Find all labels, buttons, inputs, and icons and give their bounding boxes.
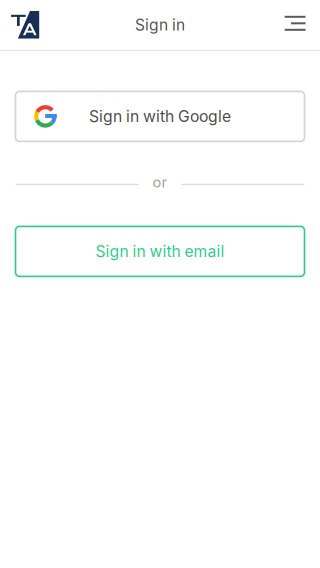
button[interactable]: Menu	[269, 0, 320, 50]
staticText: Sign in with Google	[89, 107, 231, 126]
staticText: Sign in with email	[95, 242, 224, 261]
button[interactable]: Sign in with Google	[15, 91, 304, 141]
staticText: Sign in	[135, 15, 185, 34]
staticText: or	[152, 173, 167, 191]
button[interactable]: Sign in with email	[15, 226, 304, 276]
button[interactable]: Home	[0, 0, 47, 50]
